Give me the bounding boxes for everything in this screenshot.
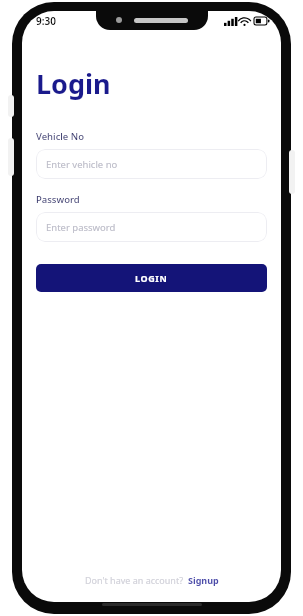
staticText: Enter vehicle no (46, 158, 118, 171)
staticText: 9:30 (36, 14, 56, 28)
staticText: LOGIN (135, 272, 168, 284)
staticText: Enter password (46, 221, 116, 234)
button[interactable]: Signup (188, 574, 219, 586)
staticText: Login (36, 65, 111, 102)
button[interactable]: Enter password (36, 212, 267, 242)
button[interactable]: LOGIN (36, 264, 267, 292)
staticText: Signup (188, 574, 219, 586)
button[interactable]: Enter vehicle no (36, 149, 267, 179)
staticText: Vehicle No (36, 130, 84, 143)
staticText: Password (36, 193, 80, 206)
staticText: Don't have an account? (85, 574, 184, 586)
